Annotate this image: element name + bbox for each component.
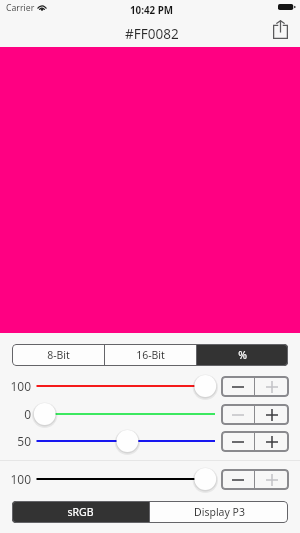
button[interactable]: Slider [34, 466, 216, 492]
staticText: 50 [17, 433, 31, 449]
staticText: 8-Bit [47, 348, 70, 362]
staticText: 100 [10, 378, 31, 394]
button[interactable]: Decrease [221, 404, 254, 425]
button[interactable]: % [197, 344, 288, 366]
button[interactable]: 8-Bit [12, 344, 104, 366]
button[interactable]: Display P3 [150, 501, 288, 523]
staticText: Display P3 [194, 505, 245, 519]
staticText: sRGB [67, 505, 94, 519]
button[interactable]: sRGB [12, 501, 149, 523]
staticText: Carrier [6, 2, 35, 14]
button[interactable]: Slider [34, 428, 216, 454]
button[interactable]: Increase [255, 404, 289, 425]
staticText: #FF0082 [125, 25, 179, 43]
button[interactable]: Decrease [221, 431, 254, 452]
button[interactable]: 16-Bit [105, 344, 196, 366]
staticText: 0 [24, 406, 31, 422]
staticText: % [238, 348, 247, 362]
button[interactable]: Share [268, 18, 292, 41]
button[interactable]: Slider [34, 401, 216, 427]
staticText: 10:42 PM [130, 4, 174, 17]
button[interactable]: Decrease [221, 376, 254, 397]
button[interactable]: Slider [34, 373, 216, 399]
staticText: 100 [10, 471, 31, 487]
button[interactable]: Increase [255, 431, 289, 452]
button[interactable]: Increase [255, 469, 289, 490]
button[interactable]: Decrease [221, 469, 254, 490]
button[interactable]: Increase [255, 376, 289, 397]
staticText: 16-Bit [136, 348, 165, 362]
